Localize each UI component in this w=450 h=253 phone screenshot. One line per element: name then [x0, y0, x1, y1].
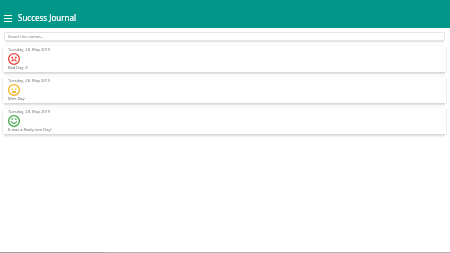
staticText: Tuesday, 28. May 2019	[8, 47, 51, 52]
button[interactable]: Tuesday, 28. May 2019	[3, 46, 446, 72]
staticText: Meh Day	[8, 96, 25, 101]
staticText: Search for names...	[8, 34, 45, 39]
button[interactable]: Tuesday, 28. May 2019	[3, 77, 446, 103]
button[interactable]: Tuesday, 28. May 2019	[3, 108, 446, 134]
staticText: Tuesday, 28. May 2019	[8, 109, 51, 114]
button[interactable]: Open navigation menu	[4, 15, 12, 22]
staticText: It was a Realy nice Day!	[8, 127, 52, 132]
button[interactable]: Search for names...	[4, 32, 445, 41]
staticText: Success Journal	[18, 12, 77, 23]
staticText: Tuesday, 28. May 2019	[8, 78, 51, 83]
staticText: Bad Day :C	[8, 65, 29, 70]
